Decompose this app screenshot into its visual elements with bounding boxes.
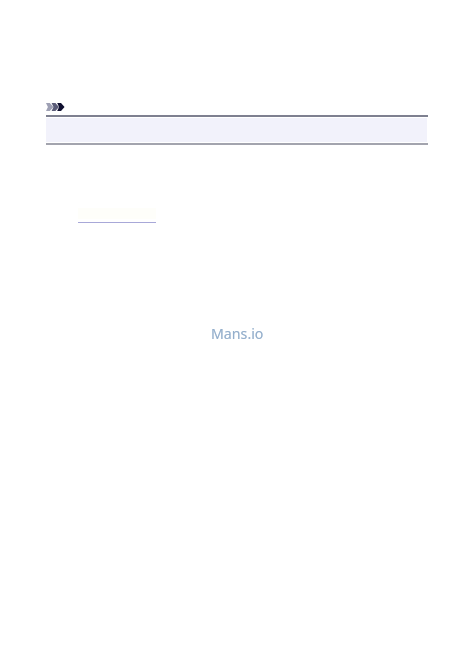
button[interactable]: Link (78, 208, 156, 223)
button[interactable]: Mans.io (211, 324, 264, 343)
button[interactable]: Next page (44, 100, 67, 114)
